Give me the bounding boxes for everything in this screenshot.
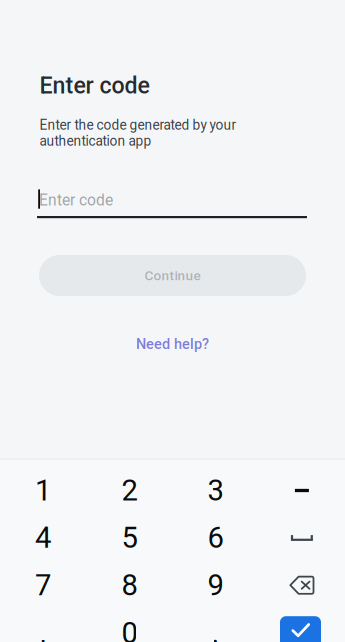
staticText: 0 [121, 616, 137, 642]
button[interactable]: 0 [86, 610, 172, 642]
button[interactable]: 2 [86, 467, 172, 514]
staticText: . [212, 616, 220, 642]
staticText: , [40, 616, 46, 642]
staticText: 3 [208, 473, 224, 508]
staticText: 1 [35, 473, 51, 508]
button[interactable]: 8 [86, 562, 172, 608]
button[interactable]: Space [259, 514, 345, 561]
staticText: 9 [208, 568, 224, 602]
staticText: Enter code [39, 191, 113, 209]
button[interactable]: 9 [172, 562, 259, 608]
staticText: Need help? [136, 335, 209, 352]
button[interactable]: 4 [0, 514, 86, 561]
staticText: 4 [35, 520, 51, 555]
button[interactable]: 6 [172, 514, 259, 561]
button[interactable]: Submit [280, 616, 321, 642]
button[interactable]: 7 [0, 562, 86, 608]
staticText: 2 [121, 473, 137, 508]
button[interactable]: Need help? [39, 334, 306, 354]
button[interactable]: . [172, 610, 259, 642]
button[interactable]: Dash [259, 467, 345, 514]
staticText: 6 [208, 520, 224, 555]
button[interactable]: , [0, 610, 86, 642]
staticText: Enter code [39, 72, 149, 99]
button[interactable]: 1 [0, 467, 86, 514]
staticText: Enter the code generated by your authent… [39, 117, 236, 149]
button[interactable]: Backspace [259, 562, 345, 608]
button[interactable]: Continue [39, 255, 306, 296]
staticText: Continue [144, 267, 200, 283]
button[interactable]: 5 [86, 514, 172, 561]
staticText: 8 [121, 568, 137, 602]
staticText: 5 [121, 520, 137, 555]
button[interactable]: 3 [172, 467, 259, 514]
staticText: 7 [35, 568, 51, 602]
